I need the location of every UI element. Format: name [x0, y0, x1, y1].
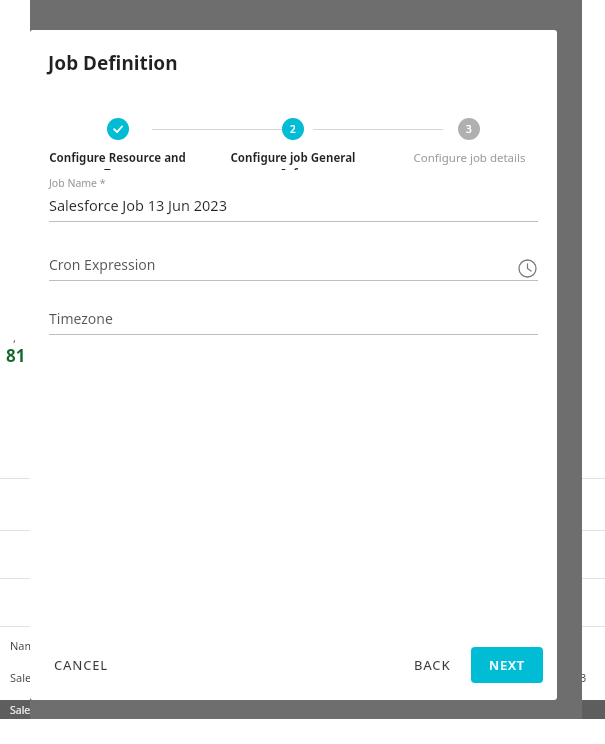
staticText: Salesforce Job 13 Jun 2023 [10, 703, 139, 717]
staticText: Job Name * [49, 176, 106, 190]
staticText: Name [10, 638, 42, 653]
staticText: Salesforce Job 13 Jun 2023 [10, 670, 145, 685]
staticText: BACK [414, 656, 451, 674]
staticText: , [13, 330, 16, 345]
staticText: CANCEL [54, 656, 109, 674]
button[interactable]: 2 [205, 92, 381, 170]
button[interactable]: Pick cron schedule [516, 257, 538, 279]
staticText: NEXT [489, 656, 525, 674]
button[interactable]: Salesforce Job 13 Jun 2023 [49, 195, 538, 221]
staticText: 81 [6, 344, 26, 367]
button[interactable]: BACK [404, 647, 461, 683]
button[interactable]: Cron Expression [49, 255, 538, 280]
staticText: Job Definition [48, 50, 178, 76]
staticText: Configure job details [413, 150, 526, 166]
staticText: 3 [466, 122, 472, 136]
button[interactable]: 3 [381, 92, 557, 166]
button[interactable]: CANCEL [44, 647, 119, 683]
button[interactable]: Timezone [49, 309, 538, 334]
staticText: Salesforce Job 13 Jun 2023 [49, 195, 227, 215]
staticText: Timezone [49, 309, 113, 328]
staticText: 8683 [561, 670, 587, 685]
staticText: Configure Resource and Type [49, 150, 186, 170]
staticText: Configure job General Info [230, 150, 356, 170]
staticText: 2 [290, 122, 296, 136]
staticText: Cron Expression [49, 255, 516, 274]
button[interactable]: NEXT [471, 647, 543, 683]
button[interactable]: Configure Resource and Type [30, 92, 205, 170]
